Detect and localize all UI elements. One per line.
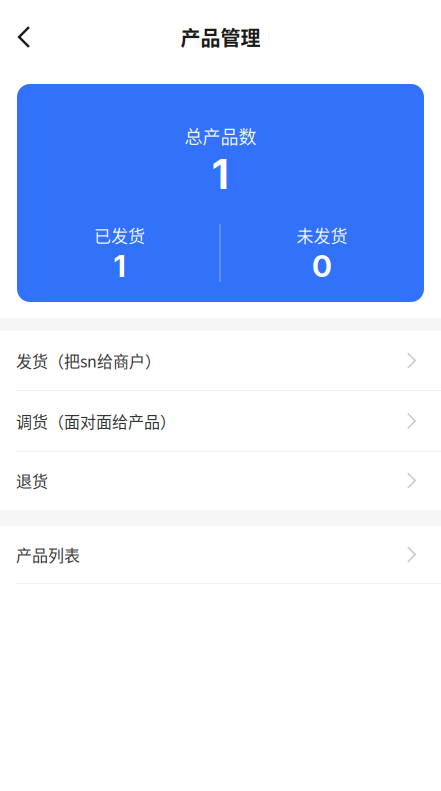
staticText: 0 [312, 248, 332, 284]
staticText: 总产品数 [184, 123, 256, 149]
staticText: 已发货 [94, 223, 145, 247]
staticText: 发货（把sn给商户） [16, 349, 161, 372]
button[interactable]: 调货（面对面给产品） [0, 391, 441, 452]
staticText: 1 [212, 149, 228, 199]
staticText: 退货 [16, 469, 48, 492]
button[interactable]: 发货（把sn给商户） [0, 331, 441, 391]
button[interactable]: 产品列表 [0, 526, 441, 584]
staticText: 未发货 [296, 223, 347, 247]
staticText: 产品列表 [16, 543, 80, 566]
staticText: 调货（面对面给产品） [16, 409, 176, 433]
staticText: 1 [113, 248, 125, 284]
button[interactable]: 退货 [0, 452, 441, 510]
button[interactable]: Back [0, 13, 48, 61]
staticText: 产品管理 [180, 22, 260, 51]
